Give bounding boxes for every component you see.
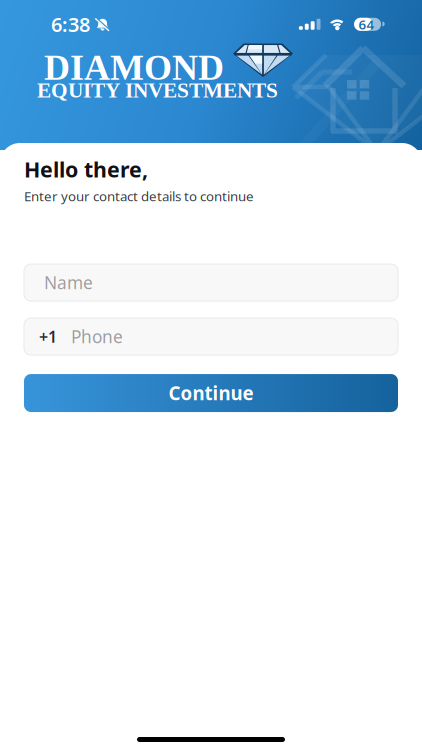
staticText: EQUITY INVESTMENTS — [37, 79, 278, 102]
staticText: Enter your contact details to continue — [24, 187, 254, 205]
button[interactable]: Continue — [24, 374, 398, 412]
staticText: Name — [44, 271, 93, 294]
staticText: 6:38 — [51, 11, 90, 38]
staticText: Hello there, — [24, 155, 148, 183]
staticText: 64 — [359, 15, 375, 33]
staticText: +1 — [39, 326, 57, 347]
staticText: Phone — [71, 325, 123, 348]
staticText: DIAMOND — [44, 48, 224, 87]
staticText: Continue — [168, 381, 253, 405]
